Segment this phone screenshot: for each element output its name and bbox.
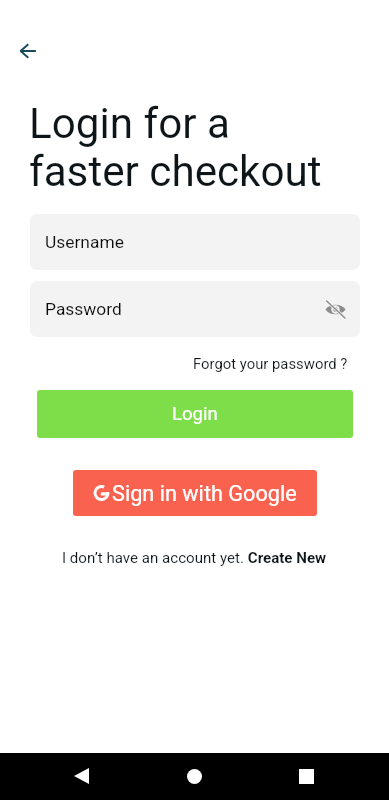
button[interactable]: Back [8,31,48,71]
button[interactable]: Password [30,281,360,337]
button[interactable]: I don’t have an account yet. Create New [62,549,327,567]
button[interactable]: Back [59,754,103,798]
staticText: Login [172,403,218,425]
button[interactable]: Forgot your password ? [193,355,348,372]
staticText: Sign in with Google [112,481,297,506]
button[interactable]: Toggle password visibility [317,291,353,327]
button[interactable]: Username [30,214,360,270]
staticText: Username [45,232,124,252]
staticText: Password [45,299,122,319]
button[interactable]: Login [37,390,353,438]
staticText: Login for a faster checkout [29,99,322,196]
button[interactable]: Home [172,754,216,798]
button[interactable]: Recents [284,754,328,798]
button[interactable]: Sign in with Google [73,470,317,516]
